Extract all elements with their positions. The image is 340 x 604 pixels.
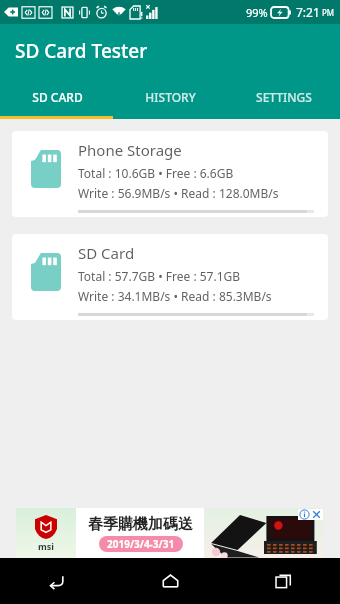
staticText: Write : 34.1MB/s • Read : 85.3MB/s [78,288,272,304]
staticText: Total : 10.6GB • Free : 6.6GB [78,165,234,181]
staticText: SETTINGS [256,89,312,105]
button[interactable]: Phone Storage [12,131,328,217]
staticText: SD Card [78,243,135,263]
staticText: SD CARD [32,89,83,105]
staticText: Write : 56.9MB/s • Read : 128.0MB/s [78,185,279,201]
button[interactable]: SD CARD [0,78,114,116]
staticText: SD Card Tester [15,38,148,64]
button[interactable]: Recent apps [227,558,340,604]
staticText: 春季購機加碼送 [88,515,193,534]
button[interactable]: SD Card [12,234,328,320]
staticText: 99% [246,5,268,20]
button[interactable]: HISTORY [114,78,227,116]
staticText: msi [38,540,54,552]
button[interactable]: Back [0,558,114,604]
staticText: HISTORY [145,89,196,105]
staticText: Total : 57.7GB • Free : 57.1GB [78,268,241,284]
staticText: PM [322,7,335,18]
staticText: Phone Storage [78,140,182,160]
staticText: 7:21 [296,4,320,20]
button[interactable]: Advertisement [16,508,324,558]
button[interactable]: Home [114,558,227,604]
staticText: 2019/3/4-3/31 [107,537,175,551]
button[interactable]: SETTINGS [227,78,340,116]
